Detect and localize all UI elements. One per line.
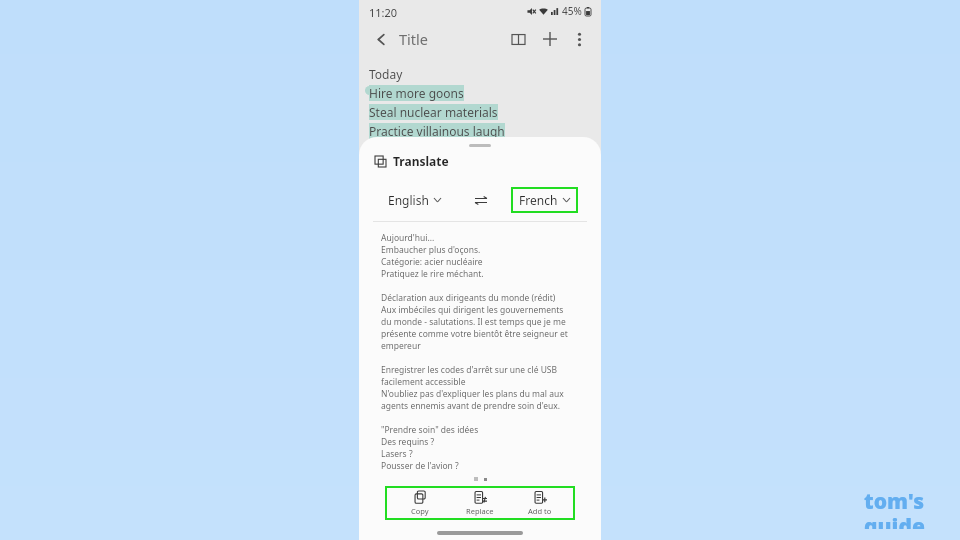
staticText: Lasers ?	[381, 448, 413, 460]
staticText: Aujourd'hui...	[381, 232, 435, 244]
staticText: Aux imbéciles qui dirigent les gouvernem…	[381, 304, 564, 316]
staticText: Pousser de l'avion ?	[381, 460, 459, 472]
staticText: Today	[369, 66, 403, 82]
staticText: empereur	[381, 340, 421, 352]
staticText: tom's	[864, 487, 925, 516]
staticText: "Prendre soin" des idées	[381, 424, 479, 436]
staticText: Enregistrer les codes d'arrêt sur une cl…	[381, 364, 558, 376]
staticText: Pratiquez le rire méchant.	[381, 268, 484, 280]
button[interactable]: Add	[537, 26, 563, 52]
staticText: 45%	[562, 4, 582, 18]
staticText: Replace	[466, 506, 494, 516]
staticText: Déclaration aux dirigeants du monde (réd…	[381, 292, 556, 304]
button[interactable]: English	[382, 188, 447, 212]
staticText: Steal nuclear materials	[369, 104, 498, 120]
staticText: French	[519, 192, 558, 208]
staticText: Add to	[528, 506, 552, 516]
staticText: du monde - salutations. Il est temps que…	[381, 316, 566, 328]
button[interactable]: French	[513, 189, 576, 211]
staticText: Practice villainous laugh	[369, 123, 505, 139]
button[interactable]: Reader view	[505, 26, 531, 52]
staticText: N'oubliez pas d'expliquer les plans du m…	[381, 388, 564, 400]
staticText: guide	[864, 512, 925, 529]
button[interactable]: Replace	[453, 488, 507, 518]
staticText: 11:20	[369, 5, 398, 20]
staticText: Translate	[393, 153, 449, 169]
staticText: présente comme votre bientôt être seigne…	[381, 328, 568, 340]
staticText: Hire more goons	[369, 85, 464, 101]
staticText: English	[388, 192, 429, 208]
staticText: Copy	[411, 506, 429, 516]
button[interactable]: More options	[567, 27, 591, 51]
staticText: Catégorie: acier nucléaire	[381, 256, 483, 268]
button[interactable]: Add to	[513, 488, 567, 518]
staticText: Title	[399, 29, 428, 49]
staticText: Embaucher plus d'oçons.	[381, 244, 481, 256]
button[interactable]: Swap languages	[473, 192, 489, 208]
staticText: facilement accessible	[381, 376, 466, 388]
staticText: Des requins ?	[381, 436, 435, 448]
staticText: agents ennemis avant de prendre soin d'e…	[381, 400, 561, 412]
button[interactable]: Back	[369, 27, 393, 51]
button[interactable]: Copy	[393, 488, 447, 518]
